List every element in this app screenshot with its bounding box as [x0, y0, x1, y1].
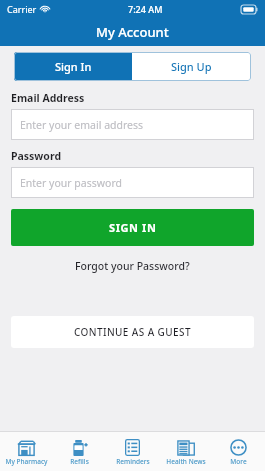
other: My Pharmacy: [17, 440, 36, 456]
staticText: 7:24 AM: [128, 3, 163, 15]
button[interactable]: Reminders: [106, 434, 159, 471]
staticText: Password: [11, 149, 62, 163]
button[interactable]: CONTINUE AS A GUEST: [11, 316, 254, 348]
staticText: SIGN IN: [109, 220, 157, 235]
button[interactable]: My Pharmacy: [0, 434, 53, 471]
staticText: Email Address: [11, 91, 85, 105]
button[interactable]: Sign Up: [132, 52, 251, 81]
staticText: Reminders: [116, 457, 150, 466]
staticText: CONTINUE AS A GUEST: [74, 325, 191, 339]
button[interactable]: Sign In: [14, 52, 132, 81]
staticText: Enter your email address: [20, 118, 144, 132]
other: Reminders: [125, 439, 140, 456]
staticText: Forgot your Password?: [75, 259, 190, 273]
staticText: Sign Up: [171, 59, 212, 74]
staticText: Sign In: [55, 59, 92, 74]
button[interactable]: SIGN IN: [11, 209, 254, 246]
staticText: Carrier: [7, 3, 37, 15]
other: Health News: [177, 440, 195, 456]
button[interactable]: Refills: [53, 434, 106, 471]
button[interactable]: Enter your email address: [11, 109, 254, 140]
button[interactable]: More: [212, 434, 265, 471]
staticText: Health News: [166, 457, 206, 466]
staticText: My Pharmacy: [5, 457, 48, 466]
other: Refills: [70, 440, 90, 456]
staticText: More: [230, 457, 247, 466]
button[interactable]: Enter your password: [11, 167, 254, 198]
button[interactable]: Health News: [159, 434, 212, 471]
other: More: [230, 439, 247, 456]
staticText: Enter your password: [20, 176, 122, 190]
staticText: My Account: [96, 23, 169, 41]
button[interactable]: Forgot your Password?: [67, 257, 198, 275]
staticText: Refills: [70, 457, 89, 466]
